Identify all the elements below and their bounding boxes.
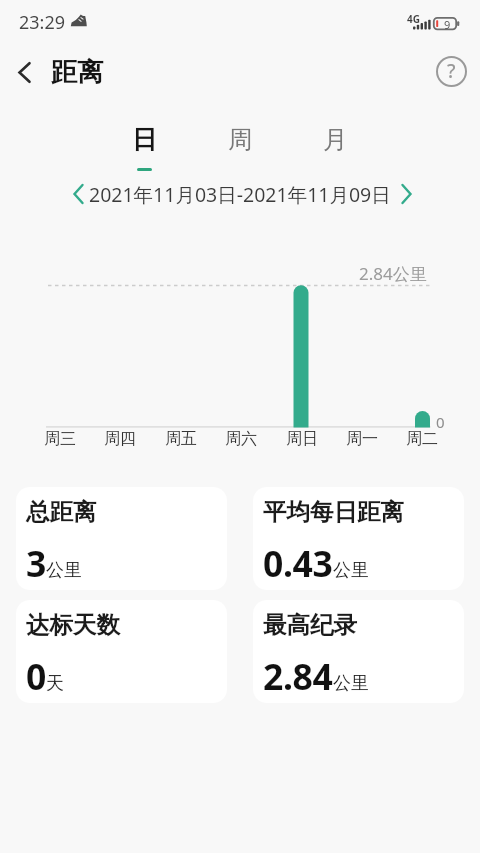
staticText: 0 (26, 652, 46, 700)
staticText: 周三 (44, 429, 76, 449)
staticText: 达标天数 (26, 610, 120, 640)
staticText: 2021年11月03日-2021年11月09日 (89, 181, 391, 208)
staticText: 天 (46, 672, 64, 695)
staticText: 周一 (346, 429, 378, 449)
staticText: 周四 (104, 429, 136, 449)
staticText: 月 (323, 124, 348, 155)
staticText: 周 (228, 124, 253, 155)
button[interactable]: ? (432, 52, 470, 90)
staticText: 公里 (46, 559, 82, 582)
staticText: 23:29 (19, 10, 66, 35)
staticText: ? (447, 58, 456, 84)
staticText: 总距离 (26, 497, 97, 527)
staticText: 公里 (333, 672, 369, 695)
staticText: 2.84公里 (359, 262, 427, 285)
button[interactable]: 月 (300, 121, 370, 157)
staticText: 最高纪录 (263, 610, 357, 640)
staticText: 周日 (286, 429, 318, 449)
button[interactable]: 日 (109, 121, 179, 157)
button[interactable]: 周 (205, 121, 275, 157)
staticText: 平均每日距离 (263, 497, 404, 527)
button[interactable]: 最高纪录 (253, 600, 464, 703)
button[interactable]: 达标天数 (16, 600, 227, 703)
staticText: 0 (436, 412, 445, 432)
staticText: 周五 (165, 429, 197, 449)
button[interactable]: 平均每日距离 (253, 487, 464, 590)
button[interactable]: 总距离 (16, 487, 227, 590)
staticText: 公里 (333, 559, 369, 582)
staticText: 日 (132, 124, 157, 155)
staticText: 4G (407, 12, 420, 26)
staticText: 0.43 (263, 539, 333, 587)
staticText: 距离 (51, 56, 103, 89)
button[interactable] (392, 180, 420, 208)
staticText: 2.84 (263, 652, 333, 700)
staticText: 9 (444, 17, 451, 31)
button[interactable] (6, 56, 42, 88)
staticText: 周二 (406, 429, 438, 449)
staticText: 周六 (225, 429, 257, 449)
staticText: 3 (26, 539, 46, 587)
button[interactable]: 2021年11月03日-2021年11月09日 (75, 178, 405, 210)
button[interactable] (64, 180, 92, 208)
